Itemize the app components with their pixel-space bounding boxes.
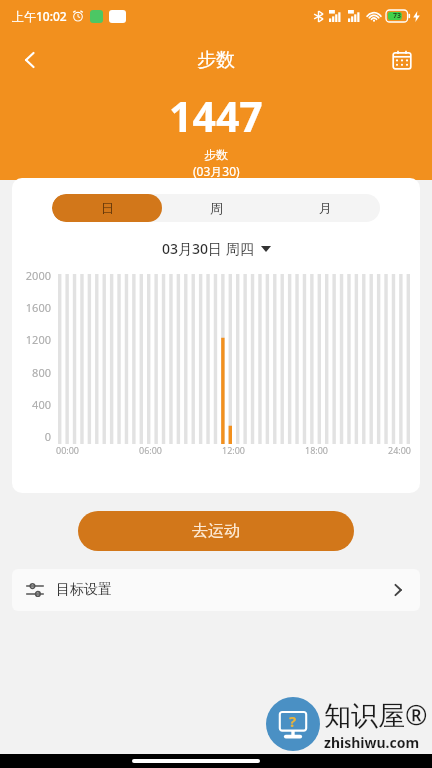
staticText: 2000 [25, 268, 51, 283]
button[interactable]: 去运动 [78, 511, 354, 551]
button[interactable]: 月 [271, 194, 380, 222]
staticText: 日 [101, 200, 114, 216]
staticText: 800 [32, 365, 51, 380]
staticText: 知识屋® [324, 696, 428, 733]
staticText: 目标设置 [56, 581, 112, 599]
button[interactable]: Back [8, 38, 52, 82]
staticText: 24:00 [388, 444, 412, 456]
staticText: 上午10:02 [12, 8, 67, 24]
staticText: 00:00 [56, 444, 80, 456]
staticText: zhishiwu.com [324, 733, 420, 752]
staticText: 0 [44, 429, 51, 444]
button[interactable]: 03月30日 周四 [162, 239, 271, 258]
staticText: 73 [393, 11, 402, 21]
staticText: (03月30) [193, 163, 240, 179]
staticText: 步数 [197, 48, 235, 72]
staticText: 去运动 [192, 521, 240, 541]
staticText: 06:00 [139, 444, 163, 456]
staticText: ? [289, 711, 297, 731]
button[interactable]: 周 [162, 194, 271, 222]
staticText: 400 [32, 397, 51, 412]
button[interactable]: 目标设置 [12, 569, 420, 611]
staticText: 1447 [169, 88, 263, 144]
button[interactable]: 日 [52, 194, 162, 222]
staticText: 18:00 [305, 444, 329, 456]
staticText: 1200 [25, 332, 51, 347]
staticText: 月 [319, 200, 332, 216]
staticText: 03月30日 周四 [162, 239, 254, 258]
button[interactable]: Calendar [380, 38, 424, 82]
staticText: 12:00 [222, 444, 246, 456]
staticText: 1600 [25, 300, 51, 315]
staticText: 步数 [204, 147, 228, 162]
staticText: 周 [210, 200, 223, 216]
